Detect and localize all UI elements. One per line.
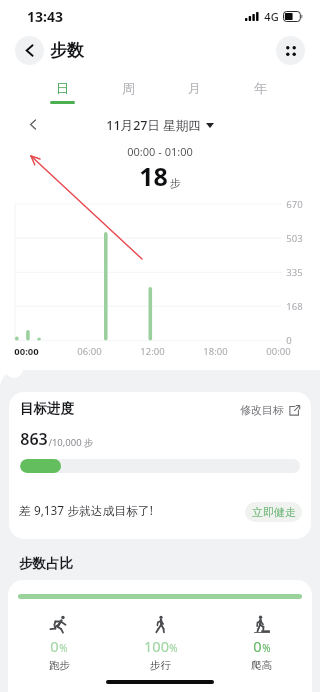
- button[interactable]: 修改目标: [240, 403, 300, 417]
- button[interactable]: 立即健走: [245, 502, 302, 522]
- button[interactable]: 月: [161, 80, 227, 104]
- staticText: 00:00: [266, 345, 291, 358]
- staticText: 目标进度: [20, 400, 74, 417]
- staticText: 周: [122, 80, 135, 96]
- staticText: 步数占比: [19, 555, 73, 572]
- staticText: 18:00: [203, 345, 228, 358]
- button[interactable]: 0: [8, 615, 110, 672]
- staticText: 步: [170, 176, 181, 190]
- button[interactable]: 11月27日 星期四: [106, 117, 214, 134]
- staticText: 00:00 - 01:00: [127, 144, 193, 159]
- staticText: 503: [286, 232, 303, 245]
- button[interactable]: Previous day: [24, 115, 42, 133]
- staticText: 13:43: [27, 7, 63, 26]
- staticText: 670: [286, 198, 303, 211]
- button[interactable]: 100: [110, 615, 211, 672]
- staticText: /10,000 步: [48, 436, 94, 449]
- staticText: 12:00: [140, 345, 165, 358]
- staticText: 日: [56, 80, 69, 96]
- staticText: 立即健走: [252, 505, 296, 519]
- staticText: 修改目标: [240, 403, 284, 417]
- staticText: 18: [139, 159, 168, 193]
- staticText: 11月27日 星期四: [106, 117, 201, 134]
- staticText: 月: [188, 80, 201, 96]
- staticText: 863: [20, 428, 48, 450]
- staticText: 00:00: [14, 345, 39, 358]
- staticText: 0: [286, 334, 292, 347]
- staticText: 0: [253, 636, 262, 656]
- staticText: 年: [254, 80, 267, 96]
- staticText: %: [59, 641, 68, 655]
- button[interactable]: More options: [276, 36, 305, 65]
- staticText: 步行: [150, 659, 171, 672]
- staticText: 步数: [50, 40, 84, 61]
- staticText: 06:00: [77, 345, 102, 358]
- button[interactable]: 周: [95, 80, 161, 104]
- staticText: 100: [144, 636, 169, 656]
- staticText: 4G: [264, 9, 279, 24]
- button[interactable]: 0: [211, 615, 312, 672]
- button[interactable]: 日: [29, 80, 95, 104]
- staticText: 跑步: [49, 659, 70, 672]
- staticText: %: [262, 641, 271, 655]
- staticText: %: [169, 641, 178, 655]
- button[interactable]: Back: [15, 36, 44, 65]
- staticText: 0: [50, 636, 59, 656]
- staticText: 差 9,137 步就达成目标了!: [19, 502, 153, 518]
- staticText: 335: [286, 266, 303, 279]
- staticText: 168: [286, 300, 303, 313]
- button[interactable]: 年: [227, 80, 293, 104]
- staticText: 爬高: [251, 659, 272, 672]
